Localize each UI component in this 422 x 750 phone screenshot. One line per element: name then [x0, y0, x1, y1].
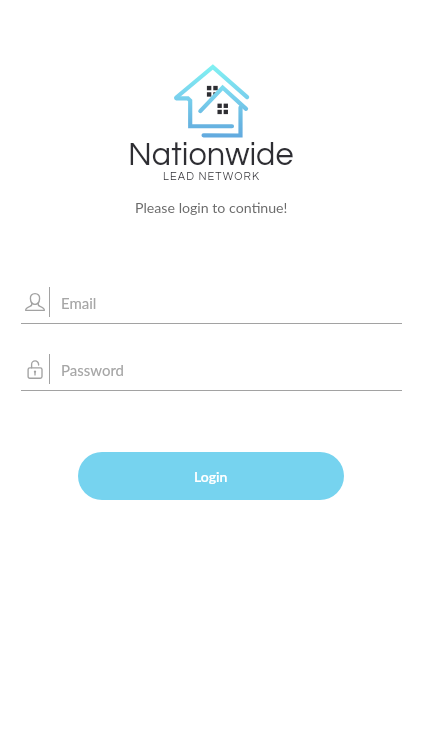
staticText: Password: [61, 361, 124, 379]
staticText: Nationwide: [128, 138, 294, 171]
other: Email: [25, 292, 45, 312]
button[interactable]: Login: [78, 452, 344, 500]
staticText: Login: [194, 468, 228, 485]
other: Password: [25, 359, 45, 379]
button[interactable]: Password: [0, 354, 422, 394]
staticText: Email: [61, 294, 97, 312]
staticText: LEAD NETWORK: [163, 171, 261, 182]
staticText: Please login to continue!: [135, 199, 288, 216]
button[interactable]: Email: [0, 287, 422, 327]
